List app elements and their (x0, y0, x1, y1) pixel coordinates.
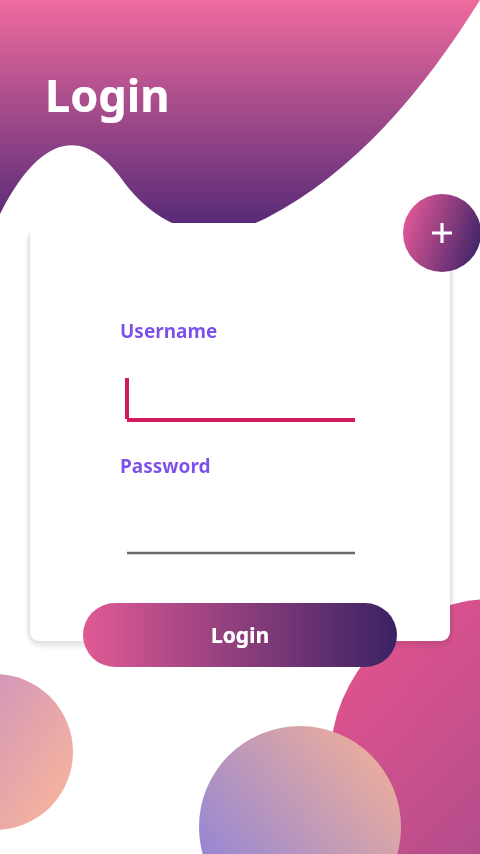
staticText: Login (211, 621, 270, 650)
button[interactable] (120, 505, 360, 561)
staticText: Username (120, 318, 218, 344)
staticText: Password (120, 453, 211, 479)
staticText: Login (45, 64, 170, 125)
button[interactable]: Add (403, 194, 480, 272)
button[interactable]: Login (83, 603, 397, 667)
button[interactable] (120, 370, 360, 426)
